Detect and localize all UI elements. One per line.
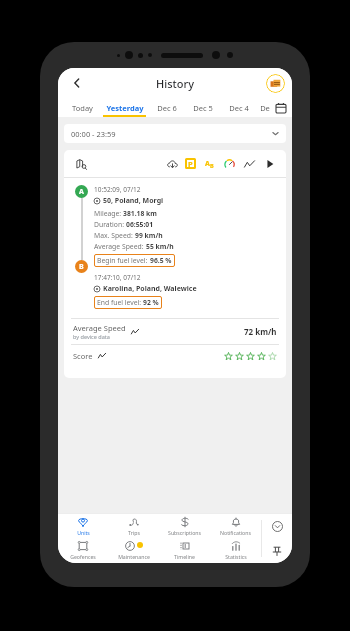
staticText: Yesterday (106, 103, 144, 113)
staticText: 10:52:09, 07/12 (94, 185, 141, 194)
button[interactable]: De (257, 98, 273, 117)
staticText: Mileage: (94, 209, 123, 218)
button[interactable]: Average Speed (73, 319, 277, 344)
button[interactable]: Today (64, 98, 100, 117)
button[interactable]: Calendar (273, 100, 288, 116)
button[interactable]: Collapse (262, 514, 292, 538)
staticText: Timeline (174, 553, 195, 560)
staticText: B (210, 162, 214, 169)
button[interactable]: Dec 6 (149, 98, 185, 117)
button[interactable]: Chart (242, 157, 256, 171)
staticText: 92 % (143, 298, 159, 307)
button[interactable]: Yesterday (100, 98, 149, 117)
staticText: Notifications (220, 529, 251, 536)
staticText: 99 km/h (135, 231, 163, 240)
button[interactable]: Markers (202, 157, 216, 171)
staticText: Statistics (225, 553, 247, 560)
staticText: Begin fuel level: (97, 256, 150, 265)
staticText: Subscriptions (168, 529, 201, 536)
button[interactable]: Trips (108, 514, 159, 538)
staticText: Units (77, 529, 90, 536)
staticText: by device data (73, 333, 110, 340)
staticText: Dec 4 (229, 103, 249, 113)
button[interactable]: Score (73, 345, 277, 367)
button[interactable]: Notifications (210, 514, 261, 538)
staticText: Average Speed: (94, 242, 146, 251)
staticText: Score (73, 351, 93, 361)
staticText: 96.5 % (150, 256, 172, 265)
button[interactable]: Units (58, 514, 108, 538)
staticText: De (260, 103, 270, 113)
staticText: Duration: (94, 220, 126, 229)
button[interactable]: Pin (262, 538, 292, 563)
button[interactable]: Geofences (58, 538, 108, 563)
button[interactable]: Account (266, 74, 285, 93)
staticText: History (156, 76, 194, 91)
staticText: Max. Speed: (94, 231, 135, 240)
staticText: A (79, 187, 84, 197)
button[interactable]: Subscriptions (159, 514, 210, 538)
button[interactable]: Timeline (159, 538, 210, 563)
button[interactable]: Map search (73, 156, 89, 172)
staticText: 72 km/h (244, 326, 277, 337)
button[interactable]: Maintenance (108, 538, 159, 563)
staticText: Today (72, 103, 93, 113)
button[interactable]: Dec 5 (185, 98, 221, 117)
staticText: B (79, 262, 84, 272)
button[interactable]: Download (165, 157, 179, 171)
staticText: P (188, 159, 193, 169)
staticText: Trips (128, 529, 140, 536)
staticText: Geofences (70, 553, 96, 560)
button[interactable]: Statistics (210, 538, 261, 563)
staticText: End fuel level: (97, 298, 143, 307)
button[interactable]: Parkings (185, 158, 196, 169)
staticText: 06:55:01 (126, 220, 154, 229)
staticText: A (205, 159, 210, 169)
staticText: 381.18 km (123, 209, 157, 218)
button[interactable]: 00:00 - 23:59 (64, 124, 286, 143)
staticText: 00:00 - 23:59 (71, 129, 116, 139)
staticText: Average Speed (73, 323, 126, 333)
button[interactable]: Back (66, 72, 88, 94)
staticText: 17:47:10, 07/12 (94, 273, 141, 282)
staticText: Dec 6 (157, 103, 177, 113)
staticText: Dec 5 (193, 103, 213, 113)
staticText: 55 km/h (146, 242, 174, 251)
staticText: 50, Poland, Morgi (103, 196, 164, 206)
button[interactable]: Dec 4 (221, 98, 257, 117)
button[interactable]: Play (263, 157, 277, 171)
staticText: Karolina, Poland, Walewice (103, 284, 197, 294)
button[interactable]: Sensors (222, 157, 236, 171)
staticText: Maintenance (118, 553, 150, 560)
